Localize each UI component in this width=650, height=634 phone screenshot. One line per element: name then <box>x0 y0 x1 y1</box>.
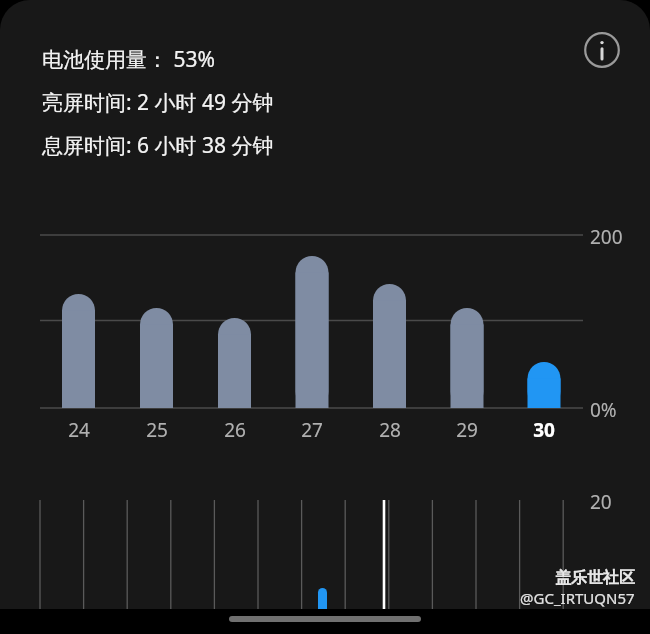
staticText: 26 <box>224 417 246 443</box>
staticText: 亮屏时间: 2 小时 49 分钟 <box>42 88 274 117</box>
button[interactable]: 24 <box>57 417 101 443</box>
button[interactable]: 25 <box>135 417 179 443</box>
staticText: @GC_IRTUQN57 <box>520 588 635 608</box>
staticText: 盖乐世社区 <box>555 568 635 588</box>
staticText: 24 <box>68 417 90 443</box>
staticText: 息屏时间: 6 小时 38 分钟 <box>42 131 274 160</box>
staticText: 20 <box>590 489 612 515</box>
staticText: 25 <box>146 417 168 443</box>
staticText: 28 <box>379 417 401 443</box>
staticText: 29 <box>456 417 478 443</box>
button[interactable] <box>0 0 650 634</box>
button[interactable]: 30 <box>522 417 566 443</box>
button[interactable]: 29 <box>445 417 489 443</box>
staticText: 电池使用量： 53% <box>42 45 215 74</box>
button[interactable] <box>0 0 650 634</box>
button[interactable]: 26 <box>213 417 257 443</box>
staticText: 30 <box>533 417 555 443</box>
staticText: 200 <box>590 224 623 250</box>
button[interactable]: 27 <box>290 417 334 443</box>
button[interactable]: Information <box>583 31 621 69</box>
staticText: 0% <box>590 397 617 423</box>
button[interactable]: 28 <box>368 417 412 443</box>
staticText: 27 <box>301 417 323 443</box>
